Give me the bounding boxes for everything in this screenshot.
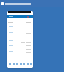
- button[interactable]: Mail: [1, 2, 4, 5]
- button[interactable]: [7, 15, 33, 18]
